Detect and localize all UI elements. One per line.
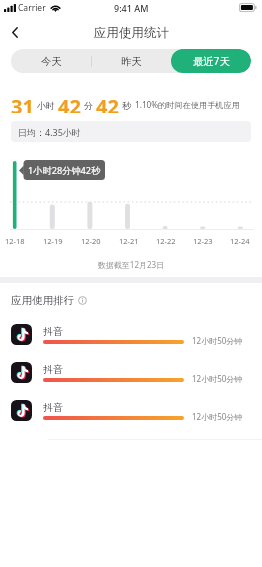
staticText: 12-19	[43, 236, 63, 246]
staticText: Carrier	[18, 2, 46, 14]
staticText: 31	[11, 93, 34, 113]
button[interactable]: 抖音	[0, 398, 262, 432]
staticText: 今天	[41, 55, 62, 68]
staticText: 12-20	[81, 236, 101, 246]
staticText: 12-23	[193, 236, 213, 246]
staticText: 秒	[122, 100, 131, 111]
staticText: 分	[84, 100, 93, 111]
staticText: 42	[96, 93, 119, 113]
staticText: 最近7天	[193, 54, 230, 68]
staticText: 抖音	[43, 401, 63, 414]
staticText: 应用使用统计	[94, 25, 169, 41]
button[interactable]: Back	[2, 20, 28, 46]
button[interactable]: 抖音	[0, 322, 262, 356]
staticText: 抖音	[43, 363, 63, 376]
staticText: 12小时50分钟	[192, 335, 243, 346]
staticText: 12-21	[119, 236, 139, 246]
staticText: 12小时50分钟	[192, 411, 243, 422]
staticText: 12-18	[5, 236, 25, 246]
staticText: 12-24	[230, 236, 250, 246]
staticText: 应用使用排行	[11, 294, 74, 307]
staticText: 1.10%的时间在使用手机应用	[135, 99, 240, 110]
staticText: 12-22	[156, 236, 176, 246]
staticText: 12小时50分钟	[192, 373, 243, 384]
staticText: 9:41 AM	[114, 2, 149, 14]
staticText: 数据截至12月23日	[0, 259, 262, 270]
button[interactable]: 抖音	[0, 360, 262, 394]
staticText: 42	[58, 93, 81, 113]
staticText: 日均：4.35小时	[18, 126, 81, 138]
staticText: 抖音	[43, 325, 63, 338]
staticText: 1小时28分钟42秒	[28, 164, 101, 177]
button[interactable]: 今天	[11, 49, 91, 73]
button[interactable]: 昨天	[91, 49, 171, 73]
staticText: 昨天	[121, 55, 142, 68]
button[interactable]: 最近7天	[171, 49, 251, 73]
staticText: 小时	[37, 100, 55, 111]
